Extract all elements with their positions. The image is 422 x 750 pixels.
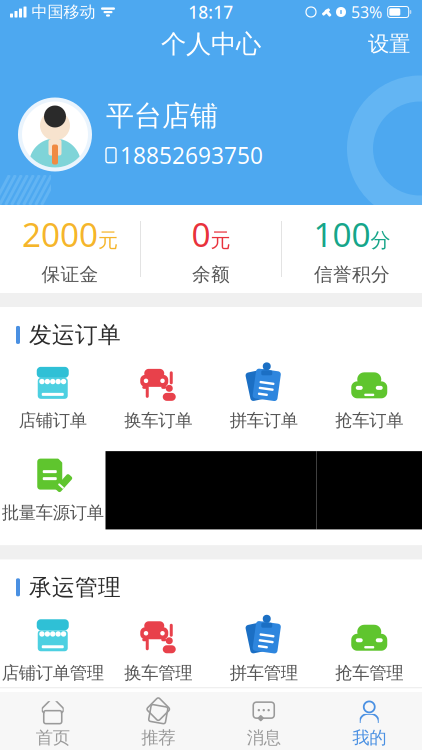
- staticText: 设置: [368, 31, 410, 57]
- button[interactable]: 批量车源订单: [0, 451, 105, 529]
- staticText: 信誉积分: [314, 263, 390, 286]
- staticText: 保证金: [41, 263, 98, 286]
- staticText: 抢车管理: [335, 662, 403, 684]
- staticText: 消息: [247, 727, 281, 748]
- button[interactable]: 抢车订单: [316, 359, 422, 437]
- button[interactable]: 拼车管理: [211, 611, 316, 690]
- staticText: 我的: [352, 727, 386, 748]
- staticText: 中国移动: [31, 2, 95, 22]
- button[interactable]: 消息: [211, 694, 316, 750]
- staticText: 发运订单: [29, 321, 121, 349]
- staticText: 18852693750: [120, 140, 263, 170]
- staticText: 分: [370, 228, 390, 253]
- button[interactable]: 2000: [0, 196, 140, 302]
- staticText: 批量车源订单: [2, 502, 104, 523]
- button[interactable]: 抢车管理: [316, 611, 422, 690]
- button[interactable]: 拼车订单: [211, 359, 316, 437]
- staticText: 推荐: [141, 727, 175, 748]
- staticText: 承运管理: [29, 573, 121, 601]
- staticText: 首页: [36, 727, 70, 748]
- staticText: 店铺订单管理: [2, 662, 104, 684]
- staticText: 平台店铺: [106, 99, 218, 133]
- button[interactable]: 推荐: [105, 694, 211, 750]
- staticText: 拼车管理: [230, 662, 298, 684]
- staticText: 100: [313, 212, 370, 256]
- staticText: 元: [210, 228, 230, 253]
- staticText: 个人中心: [161, 28, 261, 59]
- staticText: 换车订单: [124, 410, 192, 431]
- staticText: 元: [98, 228, 118, 253]
- staticText: 店铺订单: [19, 410, 87, 431]
- staticText: 换车管理: [124, 662, 192, 684]
- button[interactable]: 换车管理: [105, 611, 211, 690]
- button[interactable]: 0: [141, 196, 281, 302]
- staticText: 53%: [351, 1, 382, 23]
- staticText: 0: [191, 212, 210, 256]
- staticText: 余额: [192, 263, 230, 286]
- staticText: 2000: [22, 212, 98, 256]
- button[interactable]: 100: [282, 196, 422, 302]
- button[interactable]: 我的: [316, 694, 422, 750]
- staticText: 18:17: [188, 0, 233, 23]
- button[interactable]: 批量车源管理: [0, 704, 105, 750]
- button[interactable]: 店铺订单: [0, 359, 105, 437]
- staticText: 拼车订单: [230, 410, 298, 431]
- button[interactable]: 首页: [0, 694, 105, 750]
- button[interactable]: 店铺订单管理: [0, 611, 105, 690]
- button[interactable]: 换车订单: [105, 359, 211, 437]
- button[interactable]: 设置: [356, 23, 422, 65]
- staticText: 抢车订单: [335, 410, 403, 431]
